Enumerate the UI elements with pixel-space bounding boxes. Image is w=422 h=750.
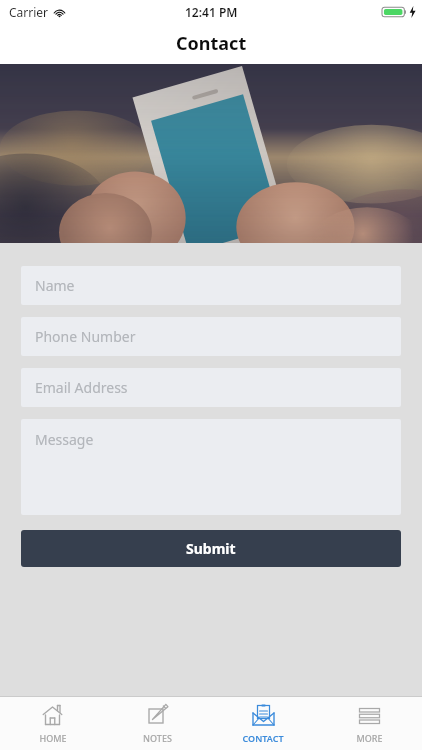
button[interactable]: MORE [316, 697, 422, 750]
staticText: HOME [39, 732, 67, 744]
staticText: Email Address [35, 378, 128, 397]
staticText: Name [35, 276, 75, 295]
button[interactable]: Phone Number [21, 317, 401, 356]
staticText: Message [35, 430, 94, 449]
staticText: NOTES [143, 732, 172, 744]
button[interactable]: Submit [21, 530, 401, 567]
staticText: 12:41 PM [185, 4, 238, 20]
staticText: Phone Number [35, 327, 136, 346]
staticText: Submit [186, 539, 236, 558]
button[interactable]: HOME [0, 697, 105, 750]
staticText: Contact [176, 31, 247, 56]
staticText: MORE [356, 732, 383, 744]
button[interactable]: NOTES [105, 697, 210, 750]
staticText: Carrier [9, 4, 49, 20]
staticText: CONTACT [242, 732, 284, 744]
button[interactable]: CONTACT [210, 697, 316, 750]
button[interactable]: Message [21, 419, 401, 515]
button[interactable]: Name [21, 266, 401, 305]
button[interactable]: Email Address [21, 368, 401, 407]
